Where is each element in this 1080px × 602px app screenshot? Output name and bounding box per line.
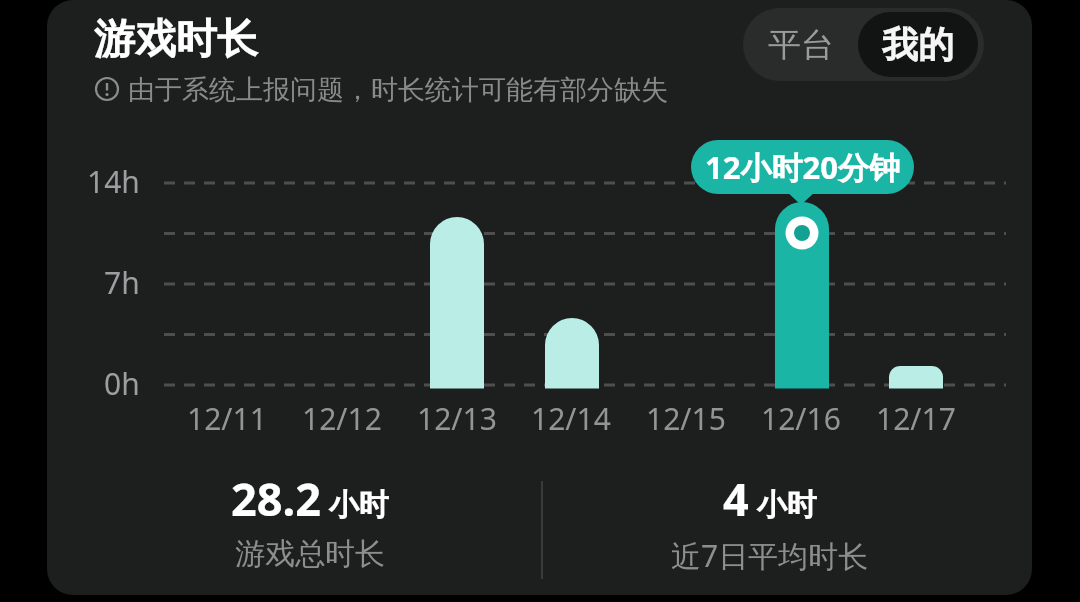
staticText: 12/17: [876, 398, 956, 439]
staticText: 4: [723, 468, 749, 529]
staticText: 由于系统上报问题，时长统计可能有部分缺失: [128, 73, 668, 107]
staticText: 游戏总时长: [235, 535, 385, 573]
staticText: 近7日平均时长: [671, 535, 869, 576]
staticText: 我的: [882, 22, 954, 67]
staticText: 12/15: [646, 398, 726, 439]
staticText: 12/16: [761, 398, 841, 439]
staticText: 12/11: [187, 398, 267, 439]
staticText: 12/13: [417, 398, 497, 439]
staticText: 小时: [321, 483, 389, 524]
staticText: 12/14: [531, 398, 611, 439]
staticText: 12小时20分钟: [705, 146, 900, 188]
button[interactable]: 我的: [858, 12, 978, 77]
staticText: 游戏时长: [94, 14, 258, 66]
staticText: 28.2: [231, 468, 321, 529]
staticText: 7h: [104, 262, 140, 303]
staticText: 0h: [104, 363, 140, 404]
staticText: 平台: [768, 24, 834, 66]
button[interactable]: 平台: [743, 8, 858, 81]
staticText: 14h: [87, 161, 140, 202]
staticText: 12/12: [302, 398, 382, 439]
staticText: 小时: [749, 483, 817, 524]
